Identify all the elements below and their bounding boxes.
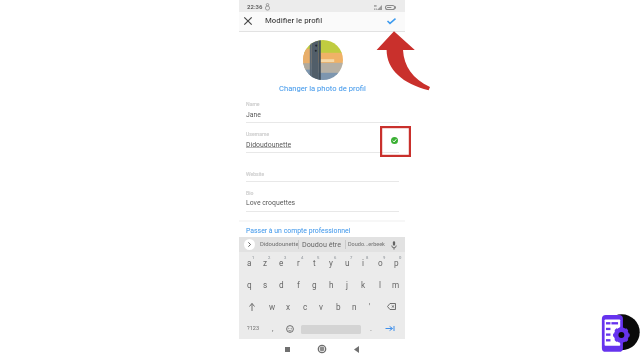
staticText: 0 bbox=[399, 255, 402, 260]
button[interactable]: Home bbox=[315, 342, 329, 356]
staticText: 3 bbox=[284, 255, 287, 260]
staticText: h bbox=[329, 280, 334, 290]
staticText: Bio bbox=[246, 190, 254, 196]
button[interactable]: More suggestions bbox=[244, 239, 255, 250]
staticText: 8 bbox=[366, 255, 369, 260]
button[interactable] bbox=[246, 187, 399, 212]
staticText: i bbox=[362, 258, 364, 268]
button[interactable]: r bbox=[290, 252, 306, 274]
button[interactable]: Backspace bbox=[382, 298, 400, 315]
button[interactable]: f bbox=[290, 274, 306, 296]
staticText: j bbox=[346, 280, 348, 290]
button[interactable]: d bbox=[273, 274, 289, 296]
staticText: d bbox=[279, 280, 284, 290]
staticText: o bbox=[378, 258, 383, 268]
staticText: z bbox=[263, 258, 268, 268]
button[interactable]: Passer à un compte professionnel bbox=[246, 225, 351, 236]
staticText: 6 bbox=[334, 255, 337, 260]
staticText: u bbox=[345, 258, 350, 268]
staticText: v bbox=[319, 302, 323, 312]
button[interactable]: t bbox=[306, 252, 322, 274]
button[interactable]: g bbox=[306, 274, 322, 296]
button[interactable]: k bbox=[355, 274, 371, 296]
button[interactable]: , bbox=[266, 320, 280, 337]
staticText: Name bbox=[246, 101, 260, 107]
staticText: f bbox=[297, 280, 300, 290]
button[interactable]: w bbox=[264, 298, 280, 315]
button[interactable]: Done bbox=[384, 14, 398, 28]
staticText: r bbox=[297, 258, 300, 268]
button[interactable]: h bbox=[323, 274, 339, 296]
button[interactable]: App logo bbox=[597, 311, 636, 353]
button[interactable]: . bbox=[364, 320, 378, 337]
button[interactable]: ' bbox=[362, 298, 378, 315]
button[interactable]: Close bbox=[241, 14, 255, 28]
staticText: ?123 bbox=[247, 325, 260, 332]
staticText: x bbox=[286, 302, 291, 312]
button[interactable]: s bbox=[257, 274, 273, 296]
button[interactable]: Shift bbox=[243, 298, 261, 315]
button[interactable]: Recents bbox=[280, 342, 294, 356]
button[interactable]: x bbox=[280, 298, 296, 315]
staticText: q bbox=[247, 280, 252, 290]
staticText: n bbox=[352, 302, 357, 312]
staticText: 5 bbox=[317, 255, 320, 260]
staticText: 2 bbox=[268, 255, 271, 260]
staticText: Modifier le profil bbox=[265, 16, 323, 25]
staticText: Passer à un compte professionnel bbox=[246, 227, 351, 235]
staticText: k bbox=[361, 280, 366, 290]
button[interactable]: Changer la photo de profil bbox=[239, 83, 405, 94]
button[interactable]: n bbox=[346, 298, 362, 315]
button[interactable]: Profile photo bbox=[303, 40, 343, 80]
staticText: b bbox=[336, 302, 341, 312]
button[interactable] bbox=[246, 128, 399, 152]
button[interactable]: m bbox=[388, 274, 404, 296]
staticText: . bbox=[370, 324, 372, 333]
staticText: 4 bbox=[301, 255, 304, 260]
button[interactable]: c bbox=[297, 298, 313, 315]
button[interactable]: y bbox=[323, 252, 339, 274]
staticText: Didoudounette bbox=[246, 141, 292, 149]
button[interactable]: ?123 bbox=[243, 320, 263, 337]
button[interactable]: a bbox=[241, 252, 257, 274]
button[interactable]: p bbox=[388, 252, 404, 274]
button[interactable]: z bbox=[257, 252, 273, 274]
button[interactable]: Next field bbox=[381, 320, 399, 337]
button[interactable]: Doudo...erbeek bbox=[348, 241, 385, 247]
staticText: l bbox=[379, 280, 381, 290]
button[interactable]: l bbox=[372, 274, 388, 296]
staticText: Love croquettes bbox=[246, 199, 296, 207]
staticText: g bbox=[312, 280, 317, 290]
button[interactable]: u bbox=[339, 252, 355, 274]
button[interactable]: Voice input bbox=[389, 240, 399, 250]
staticText: 22:36 bbox=[247, 3, 263, 10]
staticText: a bbox=[247, 258, 252, 268]
button[interactable]: j bbox=[339, 274, 355, 296]
staticText: c bbox=[303, 302, 308, 312]
button[interactable] bbox=[246, 98, 399, 122]
button[interactable]: o bbox=[372, 252, 388, 274]
button[interactable]: i bbox=[355, 252, 371, 274]
staticText: s bbox=[263, 280, 268, 290]
button[interactable] bbox=[246, 168, 399, 181]
button[interactable]: Doudou être bbox=[302, 240, 342, 248]
staticText: w bbox=[269, 302, 276, 312]
button[interactable]: Emoji bbox=[283, 320, 297, 337]
staticText: y bbox=[329, 258, 333, 268]
staticText: , bbox=[272, 324, 274, 333]
button[interactable]: Didoudounette bbox=[260, 241, 299, 248]
staticText: 9 bbox=[383, 255, 386, 260]
button[interactable]: e bbox=[273, 252, 289, 274]
staticText: t bbox=[313, 258, 316, 268]
staticText: 1 bbox=[252, 255, 255, 260]
staticText: Website bbox=[246, 171, 265, 177]
button[interactable]: q bbox=[241, 274, 257, 296]
staticText: Username bbox=[246, 131, 270, 137]
button[interactable]: v bbox=[313, 298, 329, 315]
staticText: p bbox=[394, 258, 399, 268]
staticText: ' bbox=[369, 302, 371, 312]
button[interactable]: b bbox=[330, 298, 346, 315]
staticText: Changer la photo de profil bbox=[279, 84, 366, 93]
button[interactable]: Back bbox=[349, 342, 363, 356]
